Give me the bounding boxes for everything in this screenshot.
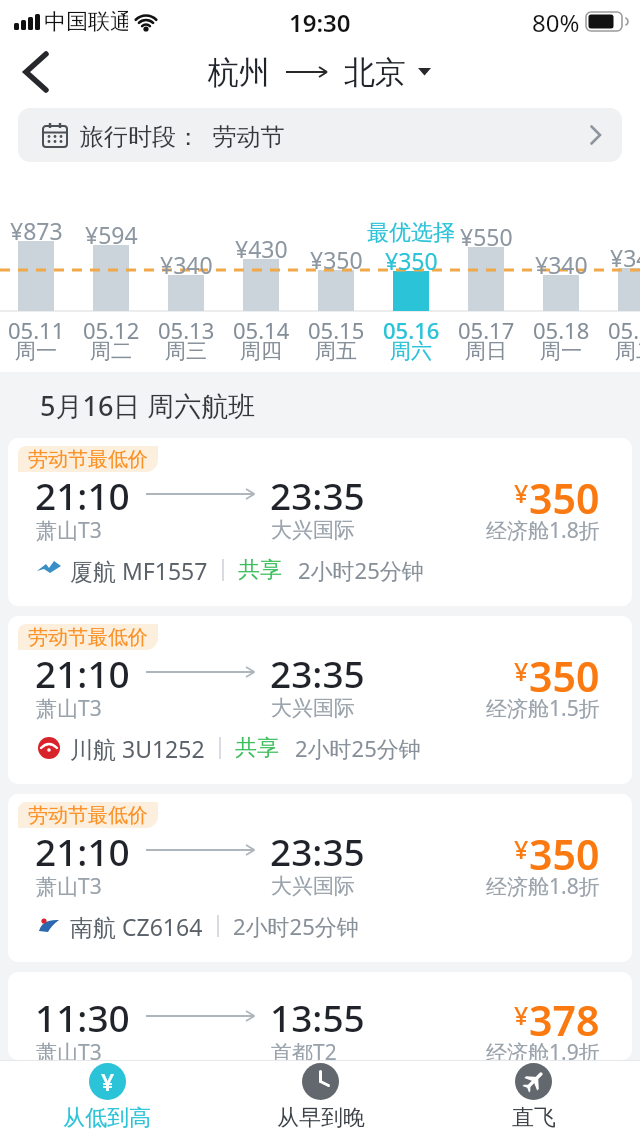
staticText: 05.17 bbox=[458, 315, 515, 341]
button[interactable]: 05.17 bbox=[446, 315, 526, 365]
staticText: 劳动节最低价 bbox=[28, 625, 148, 650]
staticText: 350 bbox=[529, 648, 600, 694]
staticText: 23:35 bbox=[270, 470, 365, 516]
staticText: 萧山T3 bbox=[36, 516, 102, 544]
staticText: 萧山T3 bbox=[36, 872, 102, 900]
staticText: 中国联通 bbox=[44, 8, 128, 36]
staticText: 周二 bbox=[90, 338, 132, 364]
staticText: 05.16 bbox=[383, 315, 440, 341]
staticText: ¥430 bbox=[235, 233, 288, 259]
staticText: 11:30 bbox=[35, 992, 130, 1038]
staticText: 共享 bbox=[235, 734, 279, 762]
staticText: 劳动节最低价 bbox=[28, 447, 148, 472]
staticText: 23:35 bbox=[270, 648, 365, 694]
staticText: 共享 bbox=[238, 556, 282, 584]
staticText: 05.19 bbox=[608, 315, 640, 341]
staticText: 周一 bbox=[540, 338, 582, 364]
staticText: ¥ bbox=[514, 654, 529, 688]
staticText: 经济舱1.5折 bbox=[486, 694, 600, 722]
staticText: 周二 bbox=[615, 338, 640, 364]
button[interactable]: 05.15 bbox=[296, 315, 376, 365]
staticText: 21:10 bbox=[35, 648, 130, 694]
staticText: 周三 bbox=[165, 338, 207, 364]
staticText: 大兴国际 bbox=[271, 695, 355, 721]
staticText: 杭州 bbox=[208, 53, 270, 92]
staticText: ¥ bbox=[514, 832, 529, 866]
staticText: ¥350 bbox=[385, 245, 438, 271]
staticText: 川航 3U1252 bbox=[70, 733, 205, 764]
staticText: ¥340 bbox=[610, 242, 640, 268]
staticText: 经济舱1.8折 bbox=[486, 872, 600, 900]
staticText: 05.18 bbox=[533, 315, 590, 341]
button[interactable]: 11:30 bbox=[8, 972, 632, 1060]
staticText: ¥340 bbox=[160, 249, 213, 275]
staticText: ¥350 bbox=[310, 244, 363, 270]
staticText: ¥873 bbox=[10, 215, 63, 241]
staticText: 萧山T3 bbox=[36, 1038, 102, 1060]
staticText: 13:55 bbox=[270, 992, 365, 1038]
staticText: 21:10 bbox=[35, 826, 130, 872]
staticText: 05.15 bbox=[308, 315, 365, 341]
staticText: 2小时25分钟 bbox=[233, 911, 359, 941]
staticText: 05.14 bbox=[233, 315, 290, 341]
button[interactable]: 05.16 bbox=[371, 315, 451, 365]
staticText: 05.11 bbox=[8, 315, 65, 341]
staticText: 21:10 bbox=[35, 470, 130, 516]
staticText: 350 bbox=[529, 826, 600, 872]
staticText: ¥ bbox=[514, 476, 529, 510]
staticText: 周一 bbox=[15, 338, 57, 364]
button[interactable]: 05.18 bbox=[521, 315, 601, 365]
button[interactable]: 05.11 bbox=[0, 315, 76, 365]
staticText: ¥340 bbox=[535, 249, 588, 275]
button[interactable]: 劳动节最低价 bbox=[8, 616, 632, 784]
staticText: 萧山T3 bbox=[36, 694, 102, 722]
staticText: ¥550 bbox=[460, 221, 513, 247]
staticText: 经济舱1.8折 bbox=[486, 516, 600, 544]
staticText: ¥ bbox=[514, 998, 529, 1032]
staticText: 最优选择 bbox=[367, 219, 455, 245]
button[interactable]: ¥ bbox=[0, 1063, 214, 1138]
staticText: 378 bbox=[529, 992, 600, 1038]
button[interactable]: 05.14 bbox=[221, 315, 301, 365]
button[interactable] bbox=[14, 50, 62, 94]
staticText: 05.13 bbox=[158, 315, 215, 341]
staticText: 23:35 bbox=[270, 826, 365, 872]
staticText: 北京 bbox=[344, 53, 406, 92]
staticText: 周日 bbox=[465, 338, 507, 364]
staticText: 厦航 MF1557 bbox=[70, 555, 208, 586]
button[interactable]: 劳动节最低价 bbox=[8, 794, 632, 962]
staticText: 05.12 bbox=[83, 315, 140, 341]
staticText: 从低到高 bbox=[63, 1104, 151, 1132]
button[interactable]: 05.12 bbox=[71, 315, 151, 365]
staticText: 经济舱1.9折 bbox=[486, 1038, 600, 1060]
button[interactable]: 劳动节最低价 bbox=[8, 438, 632, 606]
staticText: 2小时25分钟 bbox=[298, 555, 424, 585]
staticText: ¥ bbox=[101, 1066, 115, 1097]
staticText: 旅行时段： 劳动节 bbox=[80, 119, 285, 152]
staticText: 350 bbox=[529, 470, 600, 516]
staticText: 2小时25分钟 bbox=[295, 733, 421, 763]
staticText: 从早到晚 bbox=[277, 1104, 365, 1132]
button[interactable]: 直飞 bbox=[427, 1063, 640, 1138]
button[interactable]: 05.19 bbox=[596, 315, 640, 365]
staticText: 南航 CZ6164 bbox=[70, 911, 203, 942]
staticText: 大兴国际 bbox=[271, 873, 355, 899]
button[interactable]: 旅行时段： 劳动节 bbox=[18, 108, 622, 162]
staticText: 周五 bbox=[315, 338, 357, 364]
staticText: 80% bbox=[532, 6, 580, 39]
staticText: ¥594 bbox=[85, 219, 138, 245]
staticText: 19:30 bbox=[289, 6, 351, 39]
staticText: 劳动节最低价 bbox=[28, 803, 148, 828]
button[interactable]: 05.13 bbox=[146, 315, 226, 365]
staticText: 周六 bbox=[390, 338, 432, 364]
button[interactable]: 杭州 bbox=[0, 44, 640, 100]
staticText: 直飞 bbox=[512, 1104, 556, 1132]
button[interactable]: 从早到晚 bbox=[214, 1063, 427, 1138]
staticText: 5月16日 周六航班 bbox=[40, 387, 256, 424]
staticText: 大兴国际 bbox=[271, 517, 355, 543]
staticText: 首都T2 bbox=[271, 1038, 337, 1060]
staticText: 周四 bbox=[240, 338, 282, 364]
